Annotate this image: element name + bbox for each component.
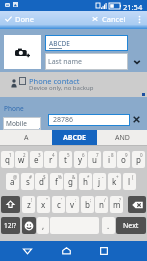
staticText: : [75,197,77,203]
button[interactable]: , [37,217,49,234]
staticText: @ [13,174,18,180]
staticText: Cancel [102,14,126,24]
staticText: q [5,154,10,165]
button[interactable]: A [0,130,52,146]
staticText: x [41,199,46,210]
staticText: 3 [38,152,41,158]
staticText: g [68,176,73,187]
button[interactable]: Clear number [131,114,142,125]
button[interactable]: . [102,217,115,234]
button[interactable]: c [52,196,65,213]
button[interactable]: More options [131,11,147,27]
button[interactable]: Phone contact [0,72,147,97]
staticText: 1 [9,152,12,158]
button[interactable]: i [103,151,116,168]
button[interactable]: Done [5,11,34,27]
button[interactable]: Back [8,241,47,261]
button[interactable]: w [15,151,28,168]
staticText: 4 [52,152,55,158]
button[interactable]: j [93,173,106,190]
button[interactable]: t [59,151,72,168]
button[interactable]: ABCDE [52,130,97,146]
button[interactable]: 28786 [48,114,130,126]
staticText: r [49,154,53,165]
staticText: - [102,174,104,180]
button[interactable]: Expand name fields [131,56,142,67]
button[interactable]: m [110,196,123,213]
button[interactable]: Recent apps [85,241,123,261]
staticText: ABCDE [49,39,70,48]
staticText: $ [43,174,46,180]
staticText: m [113,199,121,210]
button[interactable]: Next [116,217,146,234]
staticText: t [64,154,67,165]
staticText: j [98,176,101,187]
staticText: w [18,154,25,165]
button[interactable]: u [88,151,101,168]
button[interactable]: f [50,173,63,190]
button[interactable]: ABCDE [45,35,128,51]
staticText: Phone [4,104,24,113]
button[interactable]: z [22,196,35,213]
button[interactable]: AND [97,130,147,146]
staticText: 21:54 [123,2,143,12]
staticText: , [42,220,45,231]
button[interactable]: Cancel [92,11,126,27]
staticText: o [121,154,126,165]
staticText: + [116,174,119,180]
staticText: & [72,174,76,180]
button[interactable]: g [64,173,77,190]
staticText: 12!? [4,221,17,230]
button[interactable]: q [1,151,14,168]
staticText: c [57,199,61,210]
staticText: 5 [67,152,70,158]
button[interactable]: k [108,173,121,190]
button[interactable]: a [6,173,19,190]
button[interactable]: b [81,196,94,213]
staticText: 28786 [53,115,74,125]
staticText: n [99,199,104,210]
button[interactable]: e [30,151,43,168]
button[interactable]: p [132,151,145,168]
button[interactable]: o [117,151,130,168]
button[interactable]: y [74,151,87,168]
button[interactable]: h [79,173,92,190]
staticText: ABCDE [63,133,87,143]
staticText: A [24,133,29,143]
button[interactable]: l [123,173,136,190]
button[interactable]: x [37,196,50,213]
staticText: 2 [23,152,26,158]
button[interactable]: Symbols [1,217,20,234]
button[interactable]: v [66,196,79,213]
button[interactable]: Last name [45,53,128,70]
staticText: % [58,174,62,180]
staticText: Device only, no backup [29,84,94,92]
staticText: e [34,154,39,165]
staticText: ( [132,174,134,180]
button[interactable]: Backspace [128,196,146,213]
staticText: ! [31,197,33,203]
staticText: a [10,176,15,187]
staticText: * [87,174,90,180]
staticText: ; [90,197,92,203]
button[interactable]: Emoji [22,217,36,234]
staticText: Done [15,14,34,24]
button[interactable]: n [95,196,108,213]
button[interactable]: r [44,151,57,168]
button[interactable]: d [35,173,48,190]
staticText: Mobile [6,119,27,128]
staticText: / [104,197,106,203]
staticText: 0 [140,152,143,158]
button[interactable]: Home [47,241,85,261]
button[interactable]: Mobile [3,117,41,130]
button[interactable]: Shift [1,196,20,213]
staticText: 9 [125,152,128,158]
staticText: Next [123,221,139,231]
staticText: # [29,174,32,180]
staticText: i [108,154,111,165]
staticText: f [55,176,58,187]
button[interactable]: Add photo [4,35,41,69]
staticText: d [39,176,44,187]
button[interactable]: s [21,173,34,190]
